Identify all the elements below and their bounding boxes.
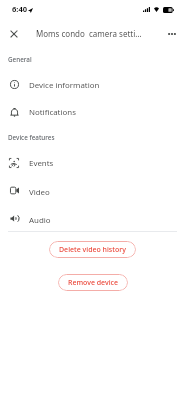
button[interactable]: Delete video history [49,241,136,258]
staticText: Video [29,187,50,198]
staticText: Delete video history [59,245,126,255]
staticText: Notifications [29,107,76,118]
staticText: General [8,55,32,64]
button[interactable]: Device information [0,71,185,99]
button[interactable]: Notifications [0,98,185,126]
button[interactable]: Remove device [58,274,128,291]
staticText: Remove device [68,278,118,288]
staticText: Events [29,158,54,169]
button[interactable]: Video [0,178,185,206]
button[interactable]: Close [2,22,25,45]
staticText: Audio [29,215,51,226]
button[interactable]: Audio [0,206,185,234]
staticText: Device information [29,80,100,91]
staticText: Device features [8,133,55,142]
staticText: 6:40 [12,4,28,14]
staticText: Moms condo camera settings [36,28,146,39]
button[interactable]: More options [160,22,183,45]
button[interactable]: Events [0,149,185,177]
